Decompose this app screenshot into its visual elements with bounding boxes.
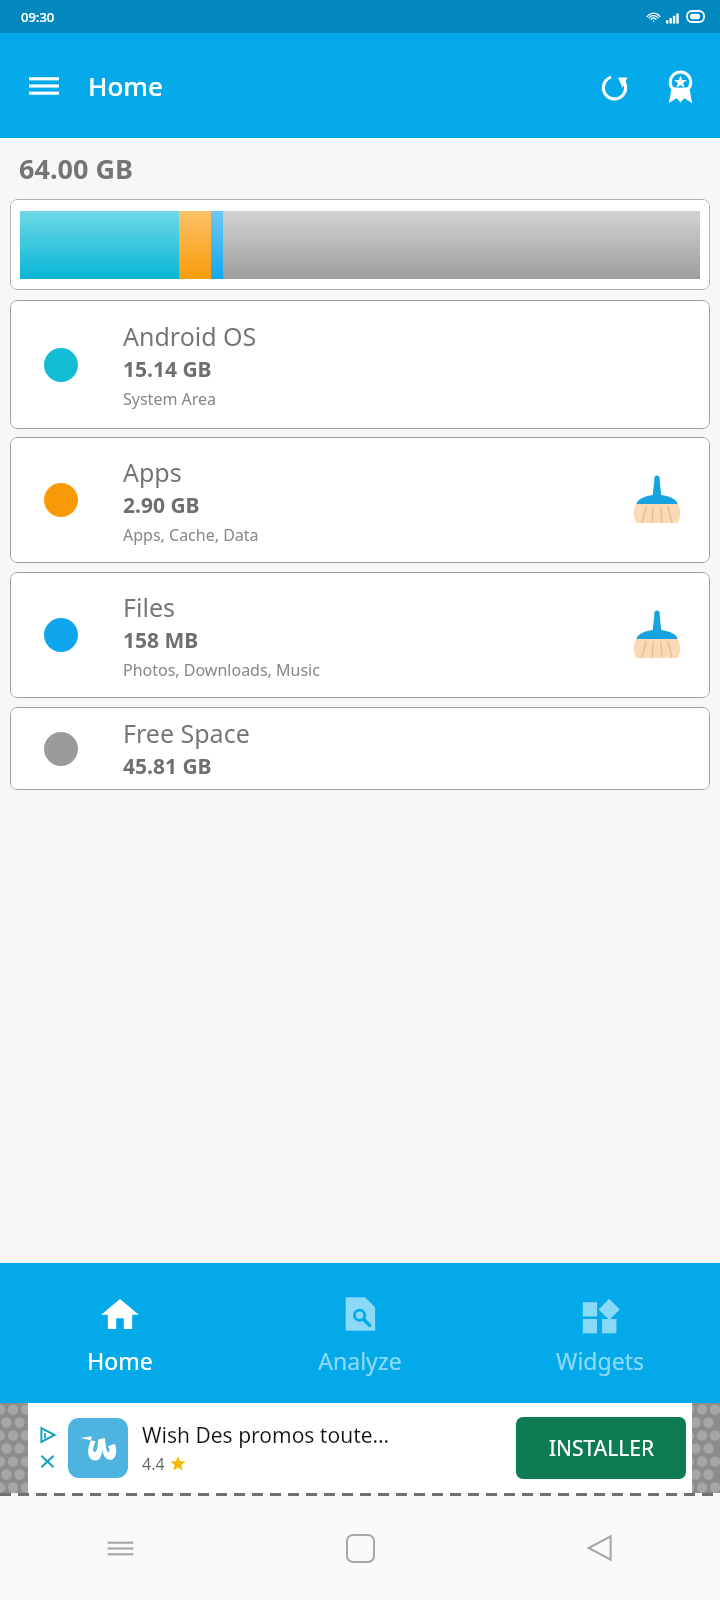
button[interactable]: Refresh — [588, 60, 640, 112]
staticText: System Area — [123, 388, 217, 410]
staticText: Analyze — [318, 1345, 402, 1376]
button[interactable] — [10, 199, 710, 290]
staticText: Home — [87, 1345, 153, 1376]
staticText: INSTALLER — [549, 1434, 654, 1463]
button[interactable]: Home — [0, 1263, 240, 1403]
staticText: 45.81 GB — [123, 752, 212, 781]
staticText: Apps — [123, 455, 182, 489]
staticText: Wish Des promos toute… — [142, 1421, 390, 1450]
button[interactable]: Recent apps — [0, 1496, 240, 1600]
staticText: Android OS — [123, 319, 257, 353]
staticText: 09:30 — [21, 8, 55, 26]
staticText: 2.90 GB — [123, 491, 200, 520]
staticText: Files — [123, 590, 175, 624]
button[interactable]: Open navigation menu — [20, 62, 68, 110]
staticText: 158 MB — [123, 626, 199, 655]
button[interactable]: Premium award — [654, 60, 706, 112]
staticText: 4.4 — [142, 1453, 165, 1475]
button[interactable]: Wish Des promos toute… — [28, 1403, 692, 1493]
button[interactable]: Free Space — [10, 707, 710, 790]
button[interactable]: Analyze — [240, 1263, 480, 1403]
button[interactable]: Home — [240, 1496, 480, 1600]
staticText: 64.00 GB — [19, 150, 133, 187]
button[interactable]: Clean Files — [629, 607, 685, 663]
button[interactable]: Android OS — [10, 300, 710, 429]
button[interactable]: Widgets — [480, 1263, 720, 1403]
staticText: Apps, Cache, Data — [123, 524, 259, 546]
button[interactable]: Clean Apps — [629, 472, 685, 528]
staticText: Free Space — [123, 716, 250, 750]
staticText: Photos, Downloads, Music — [123, 659, 320, 681]
button[interactable]: Back — [480, 1496, 720, 1600]
button[interactable]: Files — [10, 572, 710, 698]
button[interactable]: Apps — [10, 437, 710, 563]
staticText: Widgets — [556, 1345, 644, 1376]
staticText: 15.14 GB — [123, 355, 212, 384]
button[interactable]: INSTALLER — [516, 1417, 686, 1479]
staticText: Home — [88, 68, 163, 103]
